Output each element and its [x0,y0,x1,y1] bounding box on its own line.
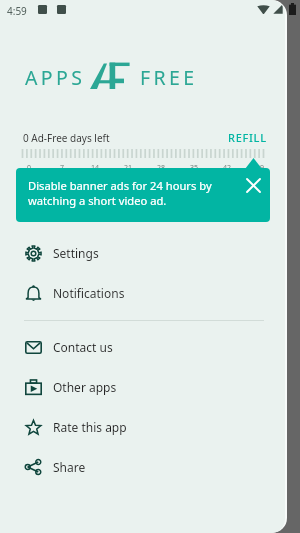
staticText: Contact us [53,339,113,355]
staticText: 0 Ad-Free days left [23,131,110,145]
button[interactable]: Notifications [0,273,285,313]
staticText: 21 [124,163,133,173]
button[interactable]: Settings [0,233,285,273]
button[interactable]: Close [236,168,270,202]
button[interactable]: Contact us [0,327,285,367]
button[interactable]: Share [0,447,285,487]
button[interactable]: REFILL [220,124,275,151]
staticText: Settings [53,245,99,261]
staticText: Rate this app [53,419,127,435]
staticText: Disable banner ads for 24 hours by watch… [28,178,212,208]
staticText: Share [53,459,86,475]
staticText: REFILL [228,130,267,145]
staticText: 28 [157,163,166,173]
staticText: 14 [91,163,100,173]
button[interactable]: Disable banner ads for 24 hours by watch… [16,168,270,222]
staticText: FREE [140,64,198,91]
staticText: Notifications [53,285,125,301]
button[interactable]: Other apps [0,367,285,407]
staticText: 0 [27,163,32,173]
staticText: 42 [223,163,232,173]
staticText: 35 [190,163,199,173]
staticText: 7 [60,163,65,173]
staticText: 4:59 [7,4,27,18]
button[interactable]: Rate this app [0,407,285,447]
staticText: APPS [25,64,86,91]
staticText: 49 [256,163,265,173]
staticText: Other apps [53,379,117,395]
